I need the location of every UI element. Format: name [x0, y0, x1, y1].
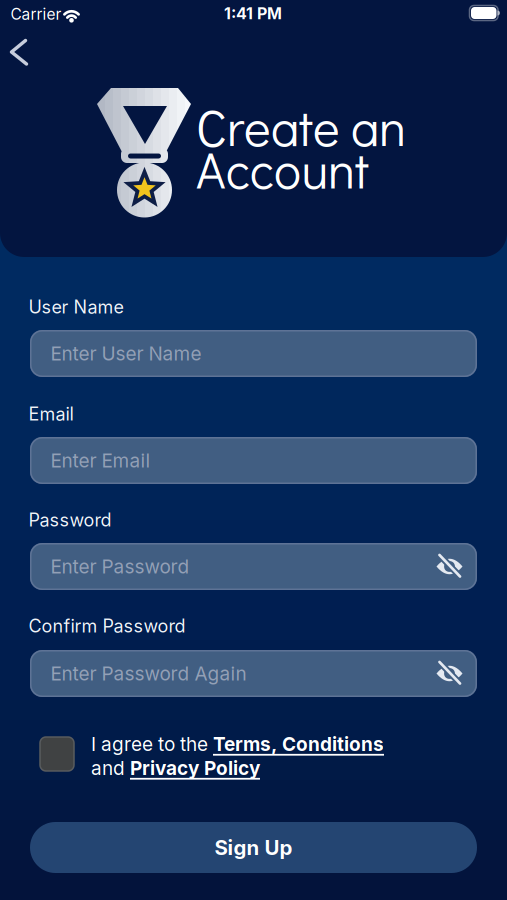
button[interactable]: Enter User Name — [30, 330, 477, 377]
button[interactable]: Enter Email — [30, 437, 477, 484]
button[interactable]: Show password — [427, 650, 472, 697]
staticText: Account — [196, 135, 369, 202]
staticText: Privacy Policy — [130, 756, 260, 779]
button[interactable]: Show password — [427, 543, 472, 590]
staticText: Password — [28, 509, 111, 531]
button[interactable]: Back — [0, 30, 40, 74]
staticText: Email — [28, 403, 73, 425]
staticText: Enter Password Again — [50, 662, 246, 685]
staticText: Terms, Conditions — [213, 732, 384, 755]
staticText: Enter Password — [50, 555, 189, 578]
staticText: Carrier — [10, 5, 61, 23]
button[interactable]: Agree to terms — [40, 737, 74, 771]
button[interactable]: Enter Password Again — [30, 650, 477, 697]
button[interactable]: Privacy Policy — [130, 756, 260, 779]
staticText: Enter Email — [50, 449, 150, 472]
staticText: User Name — [28, 296, 123, 318]
staticText: 1:41 PM — [224, 4, 282, 23]
staticText: Create an — [196, 93, 406, 159]
staticText: Sign Up — [214, 835, 292, 860]
staticText: and — [91, 756, 130, 779]
staticText: Confirm Password — [28, 615, 185, 637]
staticText: Enter User Name — [50, 342, 201, 365]
staticText: I agree to the — [91, 732, 213, 755]
button[interactable]: Terms, Conditions — [213, 732, 384, 755]
button[interactable]: Enter Password — [30, 543, 477, 590]
button[interactable]: Sign Up — [30, 822, 477, 873]
